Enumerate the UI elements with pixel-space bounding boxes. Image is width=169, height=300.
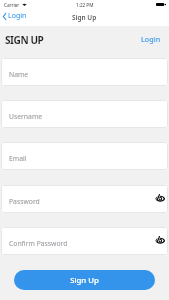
staticText: Confirm Password	[9, 239, 68, 248]
button[interactable]: Sign Up	[14, 270, 155, 290]
staticText: SIGN UP	[5, 33, 44, 47]
staticText: Name	[9, 70, 29, 79]
staticText: 1:22 PM	[76, 2, 94, 8]
button[interactable]: Confirm Password	[1, 227, 168, 255]
button[interactable]: Name	[1, 58, 168, 86]
staticText: Email	[9, 154, 27, 163]
staticText: Username	[9, 112, 43, 121]
staticText: Login	[141, 34, 161, 44]
button[interactable]: Show password	[153, 191, 167, 205]
button[interactable]: Show password	[153, 233, 167, 247]
staticText: Sign Up	[70, 275, 99, 286]
staticText: Login	[8, 11, 27, 21]
staticText: Carrier	[4, 2, 20, 8]
button[interactable]: Password	[1, 185, 168, 213]
button[interactable]: Login	[0, 10, 31, 22]
button[interactable]: Login	[133, 31, 169, 47]
staticText: Password	[9, 197, 40, 206]
button[interactable]: Email	[1, 142, 168, 170]
staticText: Sign Up	[72, 13, 97, 22]
button[interactable]: Username	[1, 100, 168, 128]
